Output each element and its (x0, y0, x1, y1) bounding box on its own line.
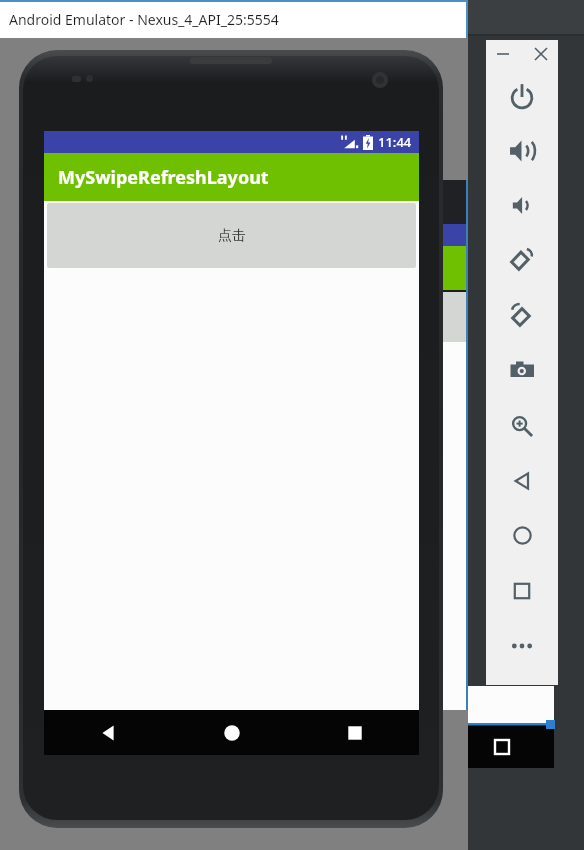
button[interactable]: Rotate right (486, 288, 558, 343)
button[interactable]: 点击 (47, 203, 416, 268)
button[interactable]: Volume up (486, 123, 558, 178)
button[interactable]: Volume down (486, 178, 558, 233)
staticText: 点击 (218, 227, 246, 245)
staticText: MySwipeRefreshLayout (58, 165, 269, 190)
button[interactable]: Recent apps (296, 710, 414, 755)
button[interactable]: Back (486, 453, 558, 508)
button[interactable]: Back (49, 710, 167, 755)
button[interactable]: Zoom (486, 398, 558, 453)
button[interactable]: Close (528, 41, 554, 67)
button[interactable]: Rotate left (486, 233, 558, 288)
button[interactable]: More (486, 618, 558, 673)
staticText: 11:44 (378, 133, 412, 151)
staticText: Android Emulator - Nexus_4_API_25:5554 (9, 10, 279, 29)
button[interactable]: Home (173, 710, 291, 755)
button[interactable]: Overview (486, 563, 558, 618)
button[interactable]: Home (486, 508, 558, 563)
button[interactable]: Minimize (490, 41, 516, 67)
button[interactable]: Take screenshot (486, 343, 558, 398)
button[interactable]: Power (486, 68, 558, 123)
